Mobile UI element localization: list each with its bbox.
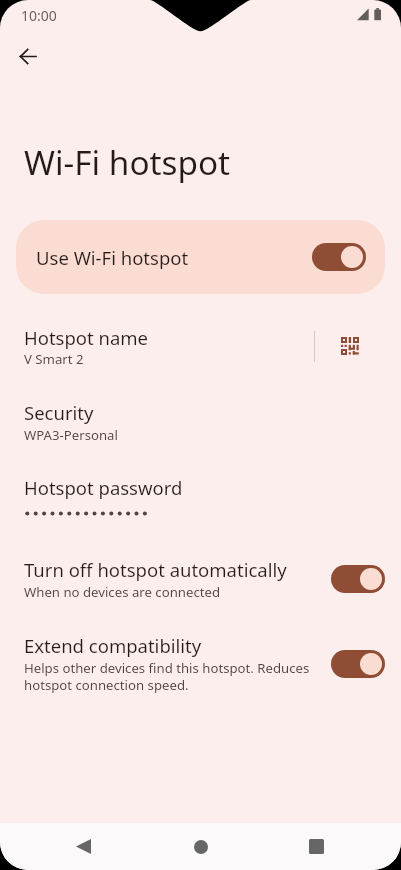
staticText: Helps other devices find this hotspot. R… bbox=[24, 659, 310, 694]
staticText: Turn off hotspot automatically bbox=[24, 557, 287, 582]
staticText: 10:00 bbox=[21, 6, 57, 25]
button[interactable]: Back bbox=[58, 823, 108, 870]
staticText: Wi-Fi hotspot bbox=[24, 139, 231, 184]
staticText: V Smart 2 bbox=[24, 350, 84, 368]
staticText: When no devices are connected bbox=[24, 583, 221, 601]
staticText: Hotspot password bbox=[24, 475, 183, 500]
staticText: WPA3-Personal bbox=[24, 426, 118, 444]
button[interactable]: Use Wi-Fi hotspot bbox=[16, 220, 385, 294]
button[interactable]: Share hotspot QR code bbox=[315, 318, 401, 374]
staticText: Extend compatibility bbox=[24, 633, 202, 658]
button[interactable]: Security bbox=[0, 393, 401, 451]
button[interactable]: Toggle bbox=[331, 650, 385, 678]
button[interactable]: Extend compatibility bbox=[0, 627, 401, 700]
button[interactable]: Home bbox=[176, 823, 226, 870]
button[interactable]: Recents bbox=[291, 823, 341, 870]
button[interactable]: Hotspot name bbox=[0, 318, 314, 374]
button[interactable]: Toggle bbox=[331, 565, 385, 593]
button[interactable]: Back bbox=[7, 35, 49, 77]
staticText: Use Wi-Fi hotspot bbox=[36, 245, 312, 270]
button[interactable]: Toggle bbox=[312, 243, 366, 271]
staticText: Hotspot name bbox=[24, 325, 149, 350]
button[interactable]: Hotspot password bbox=[0, 468, 401, 524]
staticText: Security bbox=[24, 400, 94, 425]
button[interactable]: Turn off hotspot automatically bbox=[0, 551, 401, 607]
